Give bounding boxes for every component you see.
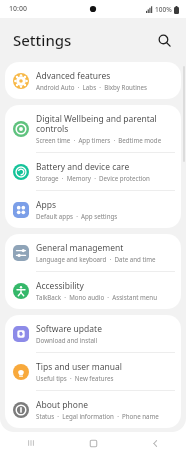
- staticText: Accessibility: [36, 280, 84, 292]
- button[interactable]: Digital Wellbeing and parental controls: [5, 105, 181, 152]
- staticText: Download and install: [36, 336, 98, 344]
- staticText: Language and keyboard · Date and time: [36, 255, 156, 263]
- button[interactable]: Advanced features: [5, 62, 181, 99]
- staticText: Settings: [13, 30, 72, 50]
- button[interactable]: About phone: [5, 391, 181, 428]
- staticText: 100%: [155, 5, 172, 14]
- staticText: Apps: [36, 199, 56, 211]
- staticText: Advanced features: [36, 70, 111, 82]
- button[interactable]: Back: [124, 432, 186, 454]
- button[interactable]: Tips and user manual: [5, 353, 181, 390]
- staticText: Android Auto · Labs · Bixby Routines: [36, 83, 148, 91]
- staticText: Default apps · App settings: [36, 212, 118, 220]
- staticText: 10:00: [9, 4, 27, 14]
- button[interactable]: Search settings: [152, 28, 176, 52]
- button[interactable]: Accessibility: [5, 272, 181, 309]
- staticText: Battery and device care: [36, 161, 130, 173]
- button[interactable]: General management: [5, 234, 181, 271]
- staticText: Screen time · App timers · Bedtime mode: [36, 136, 162, 144]
- staticText: Digital Wellbeing and parental controls: [36, 113, 173, 135]
- staticText: General management: [36, 242, 124, 254]
- staticText: Storage · Memory · Device protection: [36, 174, 150, 182]
- button[interactable]: Home: [62, 432, 124, 454]
- button[interactable]: Apps: [5, 191, 181, 228]
- staticText: Tips and user manual: [36, 361, 122, 373]
- staticText: Status · Legal information · Phone name: [36, 412, 159, 420]
- staticText: Useful tips · New features: [36, 374, 114, 382]
- button[interactable]: Recent apps: [0, 432, 62, 454]
- button[interactable]: Battery and device care: [5, 153, 181, 190]
- button[interactable]: Software update: [5, 315, 181, 352]
- staticText: About phone: [36, 399, 89, 411]
- staticText: TalkBack · Mono audio · Assistant menu: [36, 293, 157, 301]
- staticText: Software update: [36, 323, 102, 335]
